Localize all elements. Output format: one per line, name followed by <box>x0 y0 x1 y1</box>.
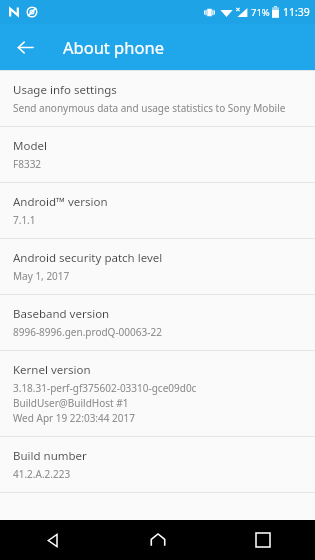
button[interactable]: Back <box>9 31 41 63</box>
staticText: About phone <box>63 36 164 58</box>
staticText: Usage info settings <box>13 82 117 98</box>
staticText: F8332 <box>13 157 42 171</box>
staticText: Build number <box>13 448 87 464</box>
button[interactable]: Baseband version <box>0 295 315 350</box>
button[interactable]: Android™ version <box>0 183 315 238</box>
staticText: 71% <box>251 6 270 19</box>
button[interactable]: Home <box>105 520 210 560</box>
staticText: 8996-8996.gen.prodQ-00063-22 <box>13 325 162 339</box>
button[interactable]: Kernel version <box>0 351 315 436</box>
staticText: Model <box>13 138 47 154</box>
staticText: 11:39 <box>283 5 310 19</box>
button[interactable]: Usage info settings <box>0 71 315 126</box>
staticText: 41.2.A.2.223 <box>13 467 71 481</box>
staticText: 7.1.1 <box>13 213 36 227</box>
button[interactable]: Build number <box>0 437 315 492</box>
staticText: Wed Apr 19 22:03:44 2017 <box>13 411 135 425</box>
staticText: Send anonymous data and usage statistics… <box>13 101 286 115</box>
staticText: May 1, 2017 <box>13 269 70 283</box>
staticText: Android security patch level <box>13 250 163 266</box>
staticText: Android™ version <box>13 194 108 210</box>
button[interactable]: Android security patch level <box>0 239 315 294</box>
button[interactable]: Model <box>0 127 315 182</box>
staticText: BuildUser@BuildHost #1 <box>13 396 129 410</box>
staticText: 3.18.31-perf-gf375602-03310-gce09d0c <box>13 381 197 395</box>
staticText: Baseband version <box>13 306 110 322</box>
button[interactable]: Recent apps <box>210 520 315 560</box>
button[interactable]: Back <box>0 520 105 560</box>
staticText: Kernel version <box>13 362 91 378</box>
